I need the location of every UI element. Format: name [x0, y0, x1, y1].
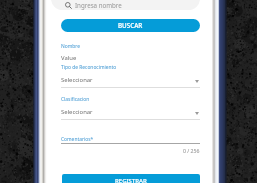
- staticText: Seleccionar: [61, 108, 93, 116]
- button[interactable]: REGISTRAR: [62, 174, 200, 183]
- staticText: BUSCAR: [118, 21, 143, 30]
- staticText: Value: [61, 54, 77, 62]
- staticText: 0 / 256: [183, 147, 200, 153]
- staticText: Ingresa nombre: [75, 1, 122, 9]
- other: Desplegar: [195, 112, 199, 115]
- other: Desplegar: [195, 80, 199, 83]
- button[interactable]: BUSCAR: [61, 19, 200, 32]
- other: Buscar: [65, 2, 72, 9]
- button[interactable]: Buscar: [51, 0, 200, 10]
- staticText: Clasificacion: [61, 96, 90, 103]
- staticText: REGISTRAR: [115, 177, 147, 183]
- staticText: Nombre: [61, 43, 80, 50]
- staticText: Comentarios*: [61, 136, 94, 143]
- staticText: Seleccionar: [61, 76, 93, 84]
- staticText: Tipo de Reconocimiento: [61, 64, 117, 71]
